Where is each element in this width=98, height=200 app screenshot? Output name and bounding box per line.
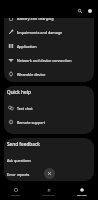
staticText: Ask questions [7, 158, 32, 163]
button[interactable]: Community [32, 181, 65, 200]
staticText: Send feedback [7, 141, 40, 147]
button[interactable]: Battery and charging [4, 18, 94, 25]
button[interactable]: Error reports [4, 167, 94, 181]
button[interactable]: Get help [65, 181, 98, 200]
button[interactable]: Remote support [4, 115, 94, 129]
button[interactable]: Account [84, 5, 95, 16]
button[interactable]: Close [44, 168, 55, 179]
button[interactable]: Application [4, 39, 94, 53]
staticText: Text chat [17, 106, 33, 111]
staticText: Impairments and damage [17, 30, 63, 35]
button[interactable]: Text chat [4, 101, 94, 115]
staticText: Remote support [17, 120, 46, 125]
button[interactable]: Impairments and damage [4, 25, 94, 39]
button[interactable]: Discover [0, 181, 32, 200]
staticText: Error reports [7, 172, 30, 177]
button[interactable]: Search [74, 5, 85, 16]
staticText: Get help [77, 193, 87, 196]
staticText: Quick help [7, 89, 31, 95]
button[interactable]: Network and device connection [4, 53, 94, 67]
button[interactable]: Wearable device [4, 67, 94, 81]
staticText: Battery and charging [17, 18, 54, 21]
button[interactable]: Ask questions [4, 153, 94, 167]
staticText: Network and device connection [17, 58, 72, 63]
staticText: Application [17, 44, 37, 49]
staticText: Wearable device [17, 72, 46, 77]
staticText: Discover [11, 193, 21, 196]
staticText: Community [42, 193, 56, 196]
